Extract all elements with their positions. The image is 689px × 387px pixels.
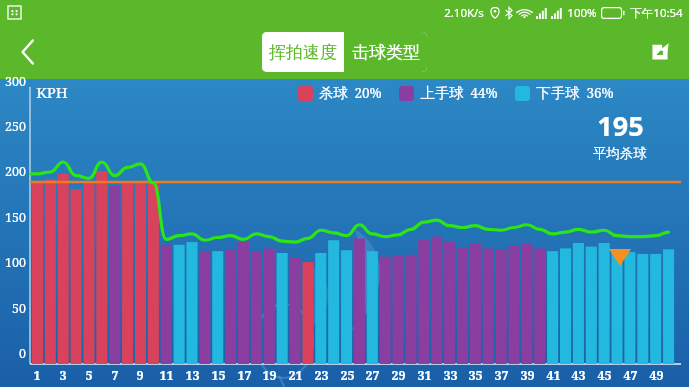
staticText: 43 [571,367,586,384]
staticText: 21 [288,367,303,384]
staticText: 23 [314,367,329,384]
staticText: 250 [5,118,26,135]
button[interactable]: Back [8,32,48,72]
staticText: 2.10K/s [444,5,484,21]
staticText: 49 [649,367,664,384]
staticText: 7 [111,367,119,384]
staticText: 11 [159,367,174,384]
staticText: 3 [59,367,67,384]
staticText: 29 [391,367,406,384]
staticText: 13 [185,367,200,384]
staticText: 100 [5,254,26,271]
staticText: 下午10:54 [630,5,683,21]
staticText: 39 [520,367,535,384]
staticText: 41 [546,367,561,384]
staticText: 挥拍速度 [269,42,337,63]
staticText: 20% [354,84,382,102]
staticText: 上手球 [420,84,464,102]
staticText: 200 [5,163,26,180]
staticText: 47 [623,367,638,384]
staticText: 195 [597,107,644,144]
staticText: KPH [36,82,68,102]
staticText: 0 [19,345,26,362]
staticText: 37 [494,367,509,384]
staticText: 100% [567,5,597,21]
staticText: 1 [33,367,41,384]
staticText: 27 [365,367,380,384]
staticText: 50 [12,300,26,317]
staticText: 5 [85,367,93,384]
staticText: 下手球 [536,84,580,102]
button[interactable]: 击球类型 [344,32,427,72]
staticText: 25 [340,367,355,384]
button[interactable]: 挥拍速度 [262,32,344,72]
staticText: 19 [262,367,277,384]
staticText: 44% [470,84,498,102]
staticText: 17 [237,367,252,384]
staticText: 36% [586,84,614,102]
staticText: 35 [468,367,483,384]
staticText: 33 [443,367,458,384]
staticText: 31 [417,367,432,384]
staticText: 300 [5,73,26,90]
staticText: 15 [211,367,226,384]
staticText: 杀球 [319,84,348,102]
staticText: 平均杀球 [593,145,647,162]
staticText: 击球类型 [352,42,420,63]
staticText: 150 [5,209,26,226]
staticText: 9 [136,367,144,384]
button[interactable]: Share [641,33,679,71]
staticText: 45 [597,367,612,384]
